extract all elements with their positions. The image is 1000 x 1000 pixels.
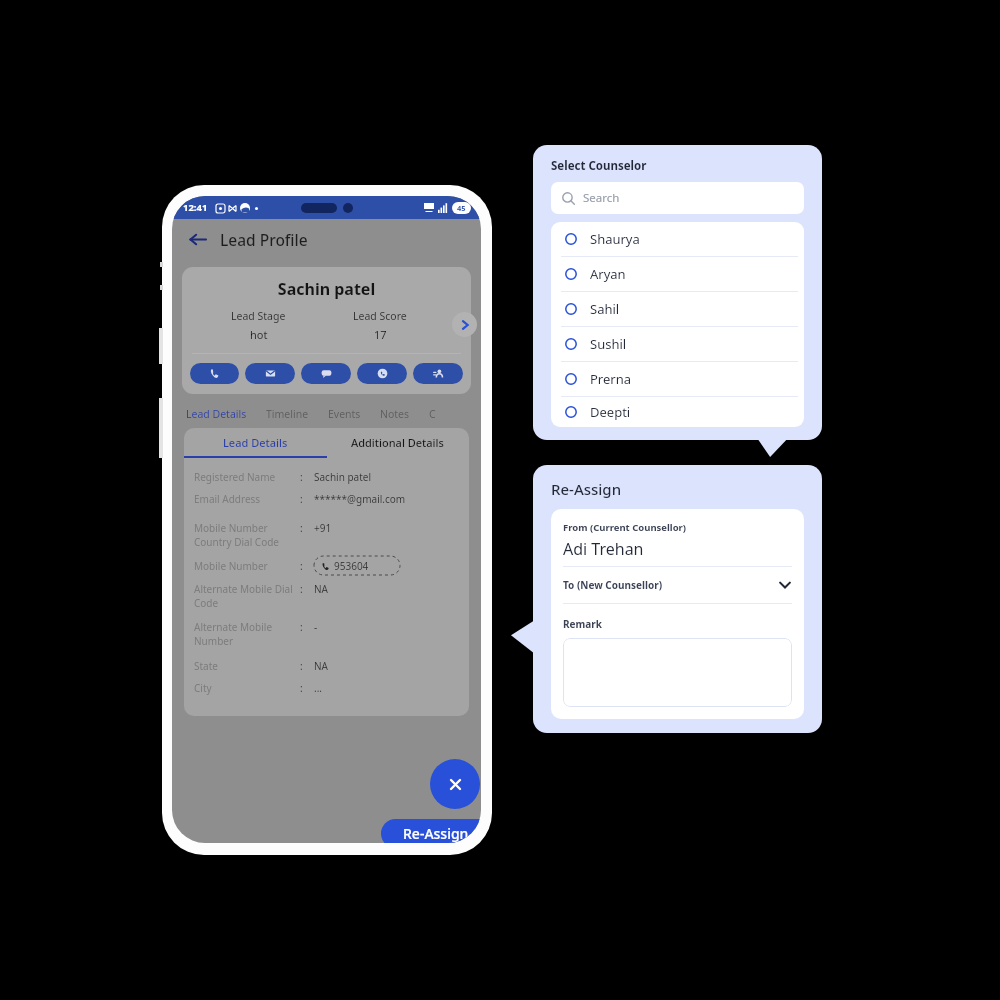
- staticText: Remark: [563, 617, 602, 631]
- button[interactable]: Sahil: [565, 292, 804, 326]
- staticText: Additional Details: [351, 435, 444, 450]
- staticText: Shaurya: [590, 230, 640, 248]
- button[interactable]: Email: [245, 363, 295, 384]
- staticText: 953604: [334, 559, 369, 573]
- button[interactable]: Additional Details: [326, 428, 469, 456]
- staticText: Deepti: [590, 403, 631, 421]
- button[interactable]: Back: [184, 226, 210, 252]
- button[interactable]: Sushil: [565, 327, 804, 361]
- button[interactable]: C: [429, 407, 436, 421]
- button[interactable]: Transfer: [413, 363, 463, 384]
- staticText: :: [300, 559, 314, 573]
- staticText: 12:41: [183, 201, 208, 214]
- button[interactable]: Call: [190, 363, 239, 384]
- staticText: ******@gmail.com: [314, 492, 406, 506]
- staticText: City: [194, 681, 300, 695]
- other: Expand: [778, 578, 792, 592]
- staticText: NA: [314, 659, 328, 673]
- button[interactable]: SMS: [301, 363, 351, 384]
- staticText: Code: [194, 596, 219, 610]
- staticText: NA: [314, 582, 328, 596]
- staticText: Alternate Mobile Dial: [194, 582, 293, 596]
- staticText: ...: [314, 681, 323, 695]
- staticText: Alternate Mobile: [194, 620, 273, 634]
- staticText: 45: [457, 203, 466, 213]
- staticText: Number: [194, 634, 234, 648]
- staticText: :: [300, 681, 314, 695]
- staticText: :: [300, 521, 314, 535]
- staticText: Registered Name: [194, 470, 300, 484]
- staticText: :: [300, 470, 314, 484]
- staticText: 17: [374, 327, 387, 342]
- staticText: hot: [250, 327, 268, 342]
- button[interactable]: Events: [328, 407, 361, 421]
- button[interactable]: 953604: [314, 556, 400, 575]
- button[interactable]: Shaurya: [565, 222, 804, 256]
- staticText: Lead Profile: [220, 229, 308, 250]
- staticText: Email Address: [194, 492, 300, 506]
- staticText: :: [300, 620, 314, 634]
- staticText: Sahil: [590, 300, 620, 318]
- staticText: Aryan: [590, 265, 626, 283]
- staticText: To (New Counsellor): [563, 578, 778, 592]
- button[interactable]: Notes: [380, 407, 410, 421]
- staticText: Sushil: [590, 335, 627, 353]
- staticText: Re-Assign: [403, 824, 469, 843]
- staticText: Mobile Number: [194, 559, 300, 573]
- button[interactable]: Aryan: [565, 257, 804, 291]
- staticText: State: [194, 659, 300, 673]
- staticText: Country Dial Code: [194, 535, 279, 549]
- staticText: From (Current Counsellor): [563, 521, 687, 534]
- staticText: Mobile Number: [194, 521, 268, 535]
- staticText: Sachin patel: [182, 278, 471, 300]
- button[interactable]: Search: [562, 182, 804, 214]
- staticText: Sachin patel: [314, 470, 372, 484]
- staticText: :: [300, 582, 314, 596]
- button[interactable]: Deepti: [565, 397, 804, 427]
- button[interactable]: Close actions: [430, 759, 480, 809]
- button[interactable]: Prerna: [565, 362, 804, 396]
- staticText: Adi Trehan: [563, 538, 644, 560]
- staticText: Prerna: [590, 370, 632, 388]
- button[interactable]: Re-Assign: [381, 819, 481, 843]
- staticText: +91: [314, 521, 332, 535]
- button[interactable]: Lead Details: [186, 407, 247, 421]
- staticText: Re-Assign: [551, 479, 622, 499]
- staticText: -: [314, 620, 318, 634]
- staticText: Lead Score: [353, 309, 407, 323]
- staticText: :: [300, 492, 314, 506]
- button[interactable]: [563, 638, 792, 707]
- staticText: :: [300, 659, 314, 673]
- staticText: Lead Stage: [231, 309, 286, 323]
- staticText: Select Counselor: [551, 158, 647, 174]
- button[interactable]: To (New Counsellor): [563, 578, 792, 592]
- button[interactable]: Next: [452, 312, 477, 337]
- staticText: Lead Details: [223, 435, 288, 450]
- staticText: Search: [583, 190, 620, 206]
- button[interactable]: Timeline: [266, 407, 309, 421]
- button[interactable]: WhatsApp: [357, 363, 407, 384]
- button[interactable]: Lead Details: [184, 428, 326, 456]
